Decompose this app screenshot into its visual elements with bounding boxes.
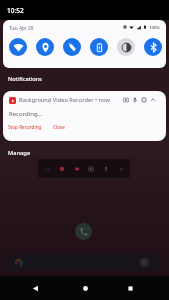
button[interactable]: Stop	[71, 163, 83, 175]
button[interactable]: Back	[23, 276, 47, 300]
button[interactable]: Recents	[118, 276, 142, 300]
button[interactable]: Microphone	[131, 96, 139, 104]
staticText: Background Video Recorder • now	[19, 96, 110, 104]
staticText: 10:52	[7, 6, 24, 15]
button[interactable]: Dark theme	[117, 38, 135, 56]
button[interactable]: Drag	[41, 163, 53, 175]
button[interactable]: Close	[115, 163, 127, 175]
button[interactable]: Record	[56, 163, 68, 175]
button[interactable]: Microphone	[100, 163, 112, 175]
button[interactable]: Bluetooth	[144, 38, 162, 56]
button[interactable]: Close	[52, 124, 66, 130]
button[interactable]: Settings	[140, 96, 148, 104]
button[interactable]: Stop Recording	[7, 124, 43, 130]
button[interactable]: Screen capture	[122, 96, 130, 104]
staticText: Tue, Apr 26	[9, 25, 34, 31]
button[interactable]: Manage	[8, 149, 31, 157]
button[interactable]: Battery Saver	[90, 38, 108, 56]
staticText: Recording...	[9, 110, 43, 118]
button[interactable]: Camera	[85, 163, 97, 175]
button[interactable]: Flashlight	[63, 38, 81, 56]
button[interactable]: Wi-Fi	[9, 38, 27, 56]
button[interactable]: Search	[7, 254, 160, 271]
button[interactable]: Location	[36, 38, 54, 56]
button[interactable]: Collapse	[149, 96, 157, 104]
button[interactable]: Home	[73, 276, 97, 300]
staticText: 100%	[149, 24, 161, 30]
staticText: Notifications	[8, 75, 42, 83]
